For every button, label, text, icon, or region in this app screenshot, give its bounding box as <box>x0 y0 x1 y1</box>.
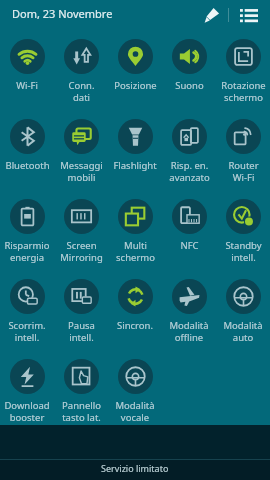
staticText: Multi schermo <box>116 239 155 263</box>
button[interactable]: Edit quick settings <box>199 2 225 28</box>
staticText: Posizione <box>114 79 157 92</box>
staticText: Flashlight <box>113 159 157 172</box>
button[interactable]: Posizione <box>108 30 162 110</box>
button[interactable]: Modalità vocale <box>108 350 162 430</box>
button[interactable]: Screen Mirroring <box>54 190 108 270</box>
button[interactable]: Scorrim. intell. <box>0 270 54 350</box>
staticText: Modalità vocale <box>115 399 155 423</box>
staticText: Pausa intell. <box>68 319 95 343</box>
button[interactable]: Settings list <box>236 2 262 28</box>
staticText: Dom, 23 Novembre <box>12 6 113 21</box>
button[interactable]: Risp. en. avanzato <box>162 110 216 190</box>
button[interactable]: Pannello tasto lat. <box>54 350 108 430</box>
button[interactable]: Modalità auto <box>216 270 270 350</box>
staticText: Bluetooth <box>5 159 50 172</box>
staticText: Rotazione schermo <box>221 79 266 103</box>
button[interactable]: Flashlight <box>108 110 162 190</box>
button[interactable]: Wi-Fi <box>0 30 54 110</box>
button[interactable]: Modalità offline <box>162 270 216 350</box>
staticText: Sincron. <box>117 319 153 332</box>
staticText: Messaggi mobili <box>60 159 103 183</box>
button[interactable]: Conn. dati <box>54 30 108 110</box>
staticText: Router Wi-Fi <box>228 159 259 183</box>
button[interactable]: Download booster <box>0 350 54 430</box>
staticText: Conn. dati <box>68 79 95 103</box>
staticText: Risp. en. avanzato <box>169 159 210 183</box>
button[interactable]: Bluetooth <box>0 110 54 190</box>
button[interactable]: Pausa intell. <box>54 270 108 350</box>
button[interactable]: Risparmio energia <box>0 190 54 270</box>
button[interactable]: Messaggi mobili <box>54 110 108 190</box>
staticText: Servizio limitato <box>101 462 169 474</box>
staticText: Screen Mirroring <box>60 239 103 263</box>
button[interactable]: Multi schermo <box>108 190 162 270</box>
staticText: Standby intell. <box>225 239 262 263</box>
staticText: Scorrim. intell. <box>8 319 46 343</box>
staticText: Risparmio energia <box>4 239 50 263</box>
staticText: NFC <box>180 239 199 252</box>
button[interactable]: Router Wi-Fi <box>216 110 270 190</box>
staticText: Wi-Fi <box>16 79 38 92</box>
staticText: Modalità auto <box>223 319 263 343</box>
button[interactable]: Sincron. <box>108 270 162 350</box>
button[interactable]: Standby intell. <box>216 190 270 270</box>
button[interactable]: NFC <box>162 190 216 270</box>
staticText: Modalità offline <box>169 319 209 343</box>
button[interactable]: Suono <box>162 30 216 110</box>
staticText: Download booster <box>4 399 50 423</box>
button[interactable]: Rotazione schermo <box>216 30 270 110</box>
staticText: Suono <box>175 79 204 92</box>
staticText: Pannello tasto lat. <box>62 399 101 423</box>
